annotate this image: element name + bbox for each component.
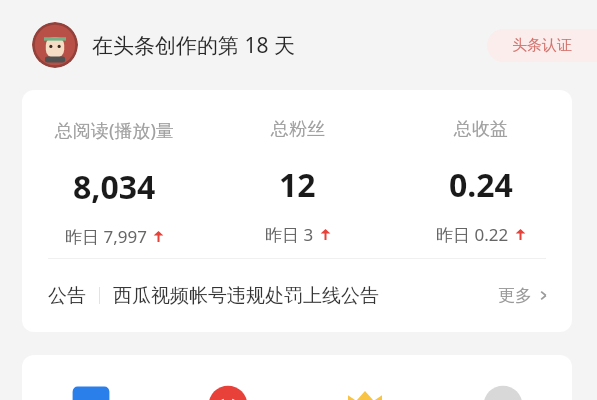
button[interactable]: 头条认证: [487, 29, 597, 62]
staticText: 总粉丝: [271, 118, 325, 141]
staticText: 8,034: [73, 165, 156, 209]
button[interactable]: Membership: [296, 382, 434, 400]
staticText: 总阅读(播放)量: [55, 118, 174, 143]
button[interactable]: 总粉丝: [206, 90, 389, 258]
staticText: 昨日 3: [265, 223, 314, 246]
button[interactable]: 总阅读(播放)量: [22, 90, 206, 258]
staticText: 昨日 7,997: [65, 225, 147, 248]
staticText: 在头条创作的第 18 天: [92, 31, 295, 60]
staticText: 公告: [48, 284, 86, 308]
button[interactable]: Profile avatar: [32, 22, 78, 68]
staticText: 更多: [498, 285, 532, 306]
staticText: 12: [279, 163, 316, 207]
staticText: 昨日 0.22: [436, 223, 509, 246]
button[interactable]: Publish video: [22, 382, 159, 400]
staticText: 总收益: [454, 118, 508, 141]
button[interactable]: More tools: [434, 382, 572, 400]
staticText: 0.24: [449, 163, 513, 207]
staticText: 头条认证: [512, 36, 572, 55]
staticText: 西瓜视频帐号违规处罚上线公告: [113, 284, 379, 308]
button[interactable]: Short video: [159, 382, 296, 400]
button[interactable]: 公告: [22, 259, 572, 332]
button[interactable]: 总收益: [389, 90, 572, 258]
